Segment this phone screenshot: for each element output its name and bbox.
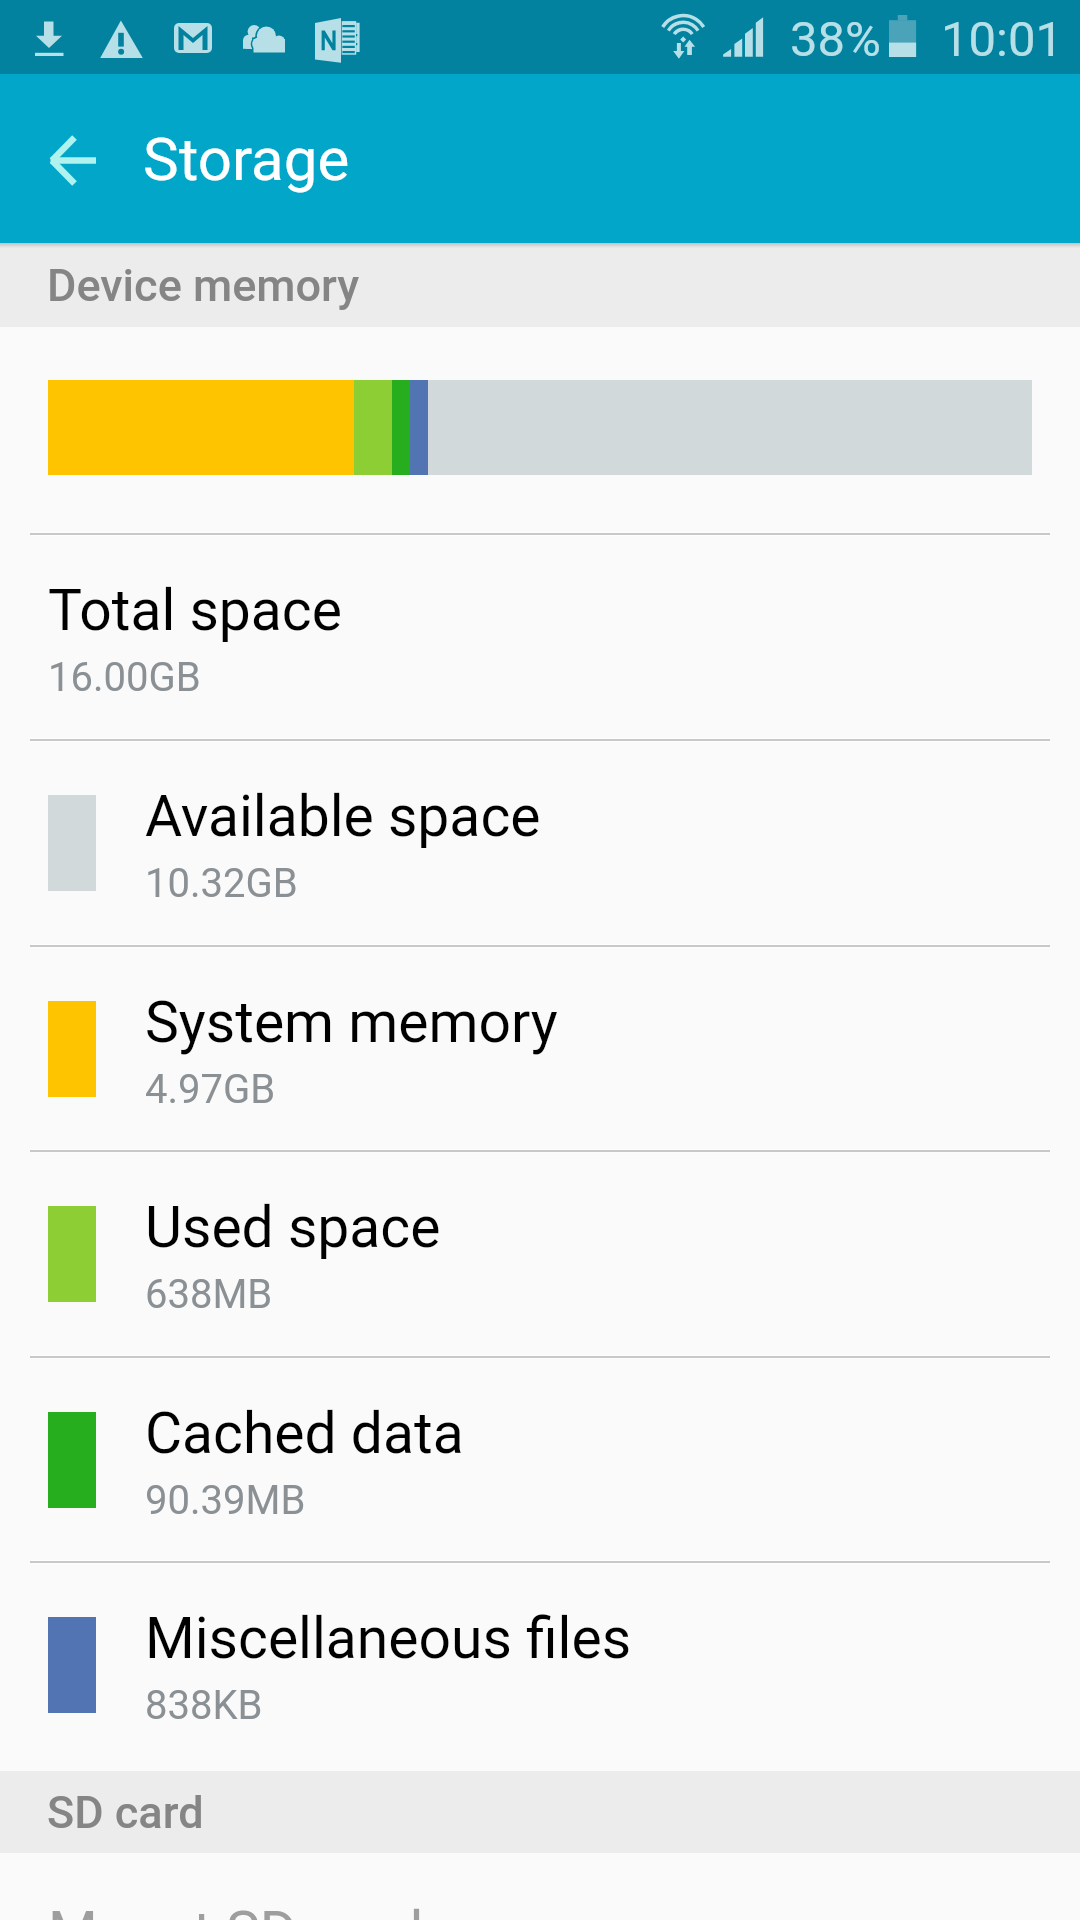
staticText: 90.39MB	[145, 1477, 306, 1524]
button[interactable]: Cached data	[0, 1356, 1080, 1561]
staticText: System memory	[145, 989, 558, 1056]
staticText: Mount SD card	[48, 1899, 424, 1920]
staticText: Available space	[145, 783, 541, 850]
staticText: Cached data	[145, 1400, 464, 1467]
staticText: 10.32GB	[145, 860, 298, 907]
button[interactable]: System memory	[0, 945, 1080, 1150]
button[interactable]: Available space	[0, 739, 1080, 945]
staticText: 838KB	[145, 1682, 263, 1729]
button[interactable]: Mount SD card	[0, 1853, 1080, 1920]
staticText: 10:01	[941, 11, 1064, 68]
button[interactable]: Miscellaneous files	[0, 1561, 1080, 1771]
button[interactable]: Total space	[0, 533, 1080, 739]
staticText: 38%	[790, 11, 881, 68]
staticText: SD card	[47, 1786, 204, 1839]
staticText: 16.00GB	[48, 654, 201, 701]
staticText: Miscellaneous files	[145, 1605, 632, 1672]
staticText: 4.97GB	[145, 1066, 276, 1113]
staticText: Device memory	[47, 259, 360, 312]
staticText: 638MB	[145, 1271, 273, 1318]
staticText: Storage	[143, 124, 350, 194]
button[interactable]: Navigate up	[24, 111, 120, 207]
button[interactable]: Used space	[0, 1150, 1080, 1356]
staticText: Total space	[48, 577, 342, 644]
staticText: Used space	[145, 1194, 441, 1261]
